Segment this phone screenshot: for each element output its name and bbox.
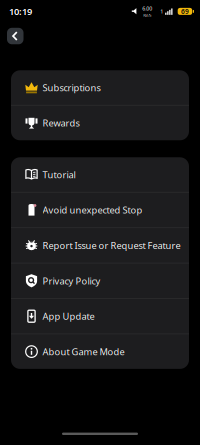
staticText: 1: [160, 8, 163, 15]
button[interactable]: Rewards: [11, 106, 189, 140]
staticText: Report Issue or Request Feature: [42, 239, 180, 252]
staticText: 69: [181, 7, 189, 16]
staticText: Tutorial: [42, 168, 75, 181]
staticText: App Update: [42, 310, 94, 322]
button[interactable]: App Update: [11, 299, 189, 333]
staticText: 10:19: [9, 5, 32, 18]
staticText: Rewards: [42, 117, 79, 129]
staticText: 6.00: [142, 5, 152, 12]
staticText: KB/S: [143, 12, 151, 18]
staticText: Privacy Policy: [42, 275, 100, 287]
button[interactable]: About Game Mode: [11, 334, 189, 369]
button[interactable]: Subscriptions: [11, 70, 189, 105]
button[interactable]: Report Issue or Request Feature: [11, 228, 189, 263]
button[interactable]: Privacy Policy: [11, 263, 189, 298]
button[interactable]: Avoid unexpected Stop: [11, 193, 189, 227]
staticText: Avoid unexpected Stop: [42, 204, 142, 216]
button[interactable]: Back: [7, 28, 23, 44]
staticText: Subscriptions: [42, 81, 100, 94]
staticText: About Game Mode: [42, 345, 124, 358]
button[interactable]: Tutorial: [11, 157, 189, 192]
